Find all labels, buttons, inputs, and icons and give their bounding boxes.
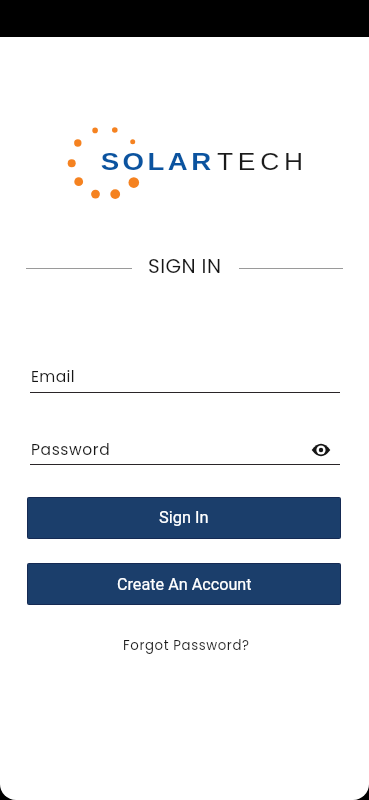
- button[interactable]: Forgot Password?: [119, 632, 254, 658]
- staticText: Email: [31, 366, 76, 388]
- staticText: SOLAR: [99, 148, 213, 175]
- staticText: Sign In: [159, 508, 209, 527]
- staticText: TECH: [217, 148, 308, 175]
- button[interactable]: Sign In: [28, 498, 340, 538]
- button[interactable]: Show password: [310, 439, 332, 461]
- staticText: Create An Account: [117, 575, 252, 594]
- button[interactable]: Password: [30, 434, 340, 465]
- staticText: SIGN IN: [148, 252, 222, 280]
- button[interactable]: Email: [30, 362, 340, 393]
- button[interactable]: Create An Account: [28, 564, 340, 604]
- staticText: Password: [31, 439, 111, 461]
- staticText: Forgot Password?: [123, 636, 250, 655]
